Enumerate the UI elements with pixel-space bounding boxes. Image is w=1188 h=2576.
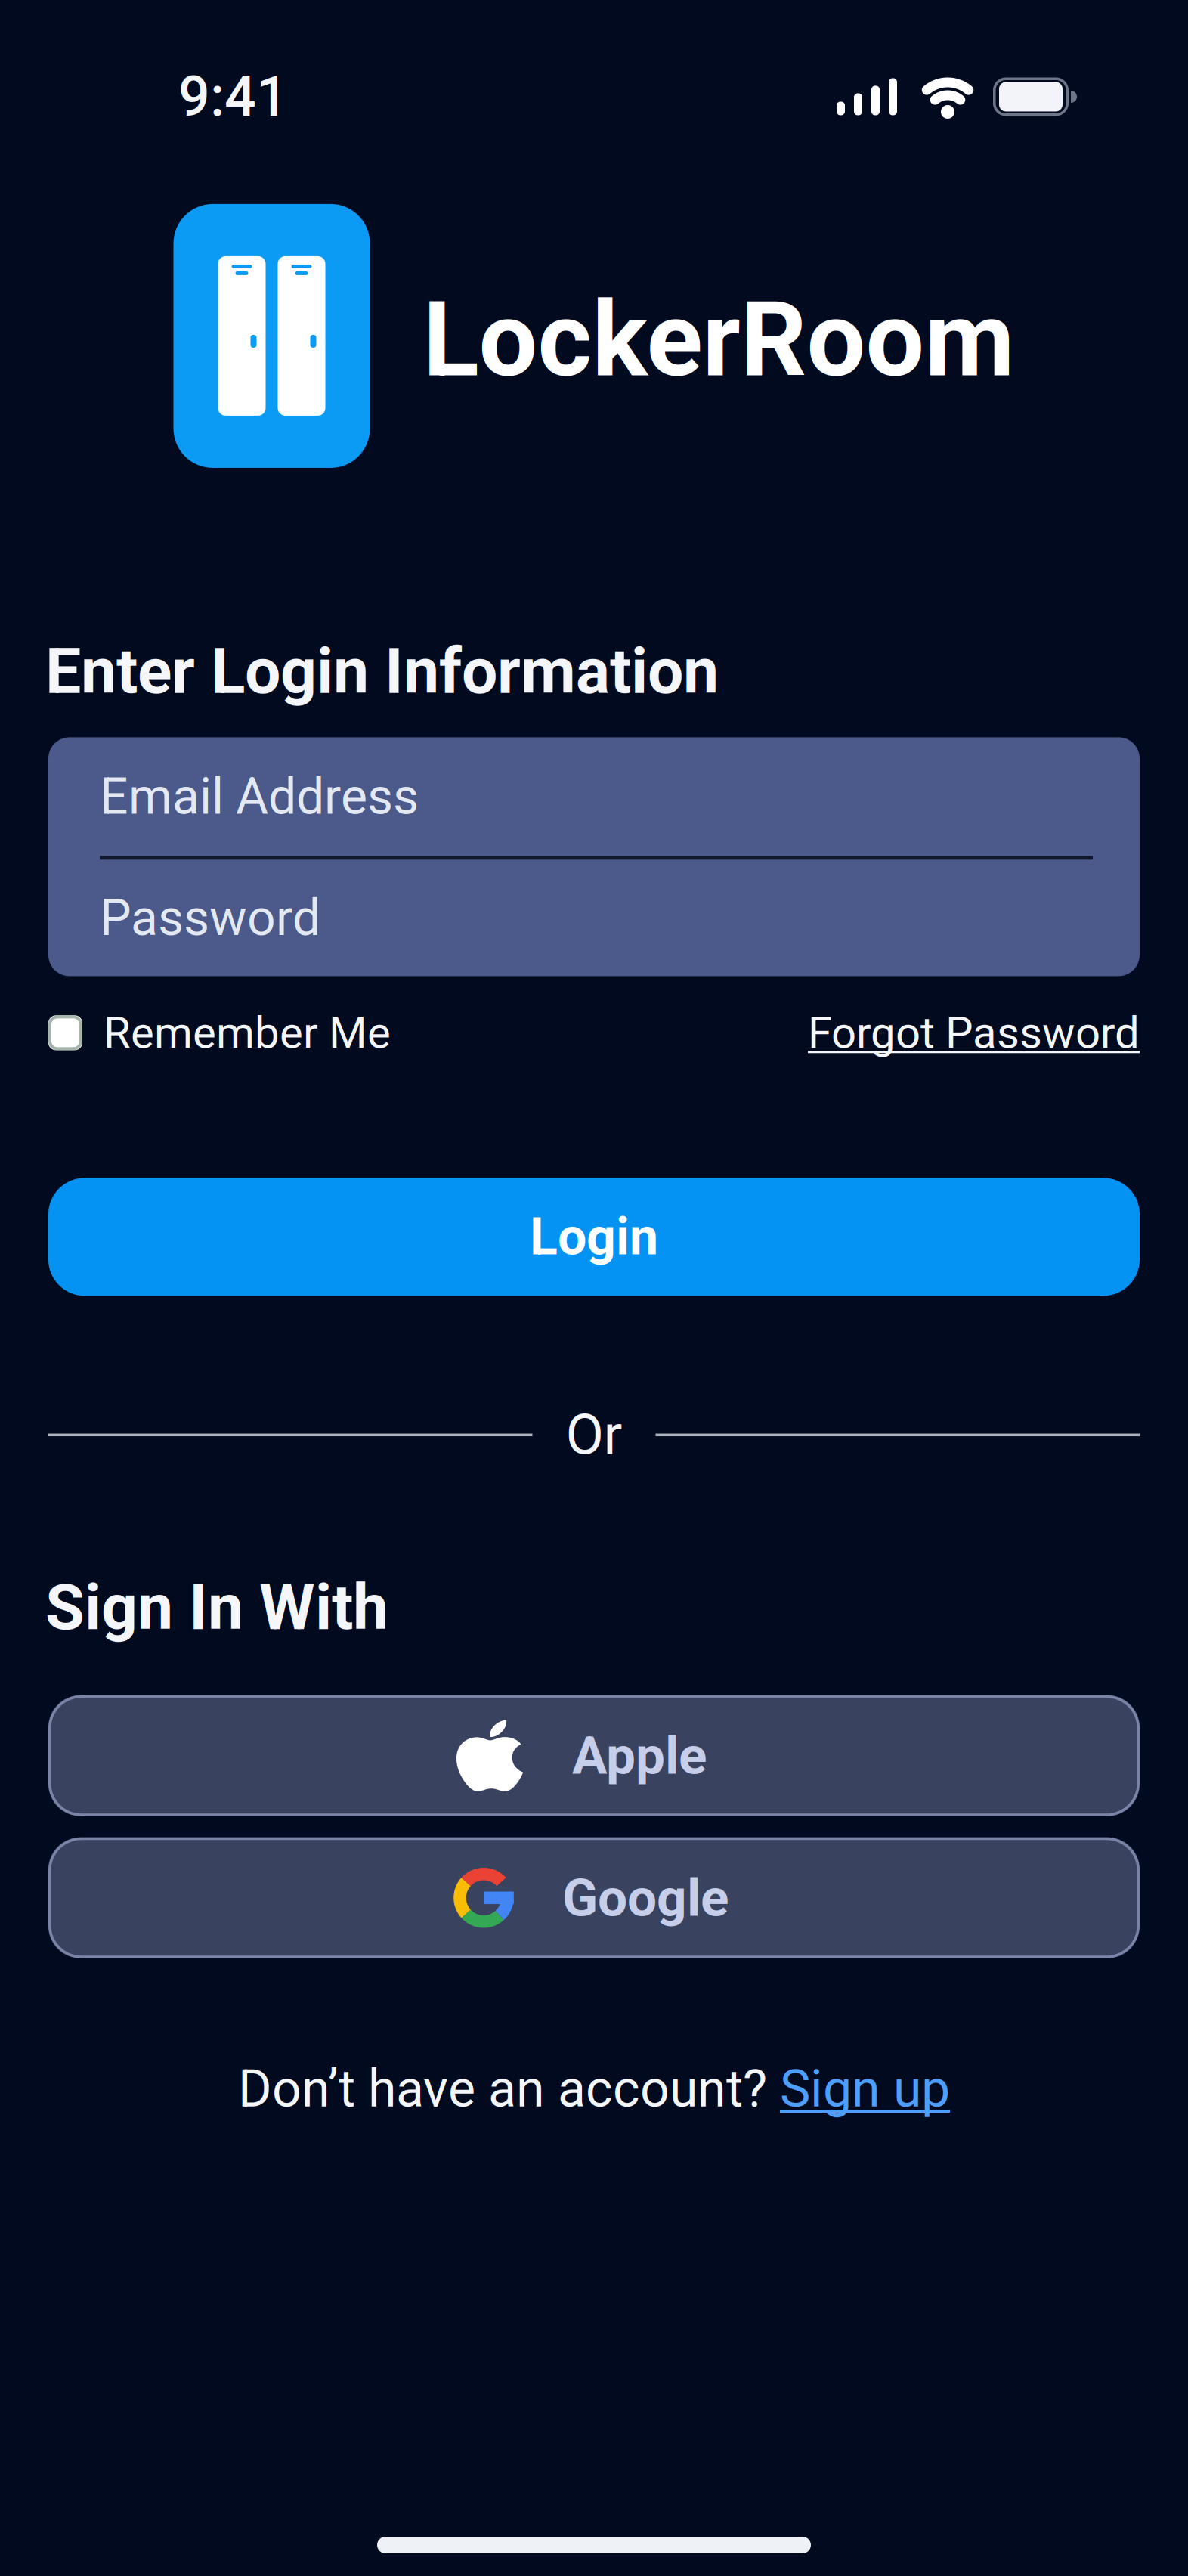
staticText: Sign In With: [45, 1570, 388, 1645]
staticText: Sign up: [780, 2059, 950, 2119]
staticText: Remember Me: [104, 1007, 391, 1059]
staticText: Forgot Password: [808, 1007, 1140, 1059]
button[interactable]: Forgot Password: [808, 1007, 1140, 1059]
staticText: Password: [100, 889, 320, 947]
staticText: Login: [530, 1207, 658, 1267]
staticText: Email Address: [100, 767, 419, 826]
button[interactable]: Login: [48, 1178, 1140, 1296]
button[interactable]: Apple: [48, 1695, 1140, 1816]
staticText: Enter Login Information: [45, 634, 719, 708]
staticText: Google: [562, 1867, 729, 1928]
staticText: Don’t have an account?: [238, 2059, 780, 2119]
button[interactable]: Remember Me: [48, 1007, 391, 1059]
staticText: Or: [566, 1402, 622, 1467]
button[interactable]: Google: [48, 1837, 1140, 1958]
staticText: 9:41: [178, 64, 288, 129]
staticText: Apple: [572, 1725, 707, 1786]
button[interactable]: Sign up: [780, 2059, 950, 2119]
staticText: LockerRoom: [423, 279, 1015, 401]
